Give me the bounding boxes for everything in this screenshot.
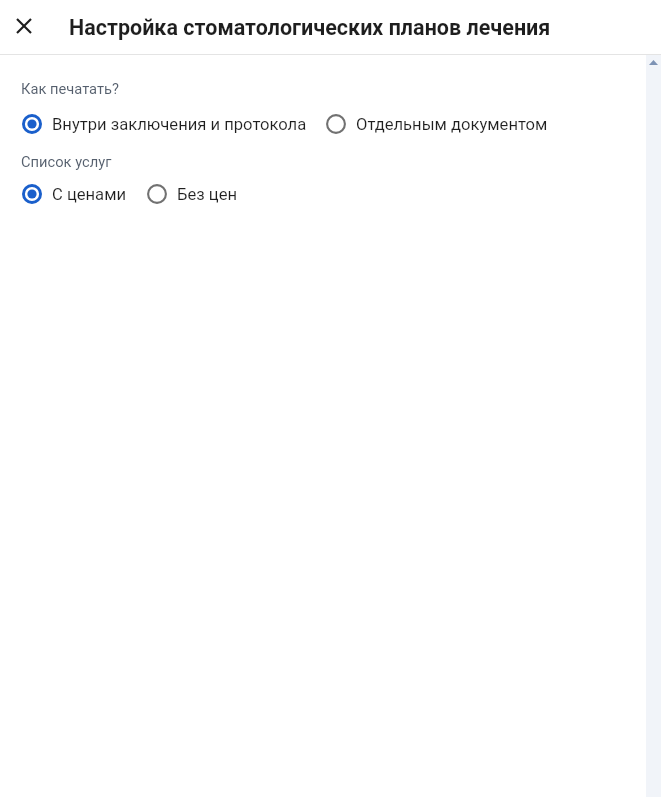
button[interactable]: Close (6, 8, 42, 44)
button[interactable]: С ценами (0, 178, 127, 210)
staticText: Отдельным документом (356, 115, 548, 134)
staticText: Без цен (177, 185, 238, 204)
button[interactable]: Scroll up (646, 55, 661, 70)
staticText: Список услуг (21, 153, 112, 170)
staticText: Как печатать? (21, 80, 119, 97)
staticText: Настройка стоматологических планов лечен… (69, 15, 551, 40)
staticText: С ценами (52, 185, 127, 204)
staticText: Внутри заключения и протокола (52, 115, 307, 134)
button[interactable]: Отдельным документом (307, 108, 548, 140)
button[interactable]: Внутри заключения и протокола (0, 108, 307, 140)
button[interactable]: Без цен (127, 178, 238, 210)
